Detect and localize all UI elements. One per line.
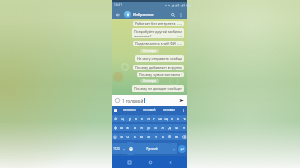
staticText: д xyxy=(168,125,171,130)
button[interactable]: Keyboard settings xyxy=(181,108,185,112)
button[interactable]: и xyxy=(145,133,152,140)
button[interactable]: Clipboard xyxy=(114,109,117,112)
button[interactable]: м xyxy=(138,133,145,140)
staticText: ч xyxy=(126,134,129,139)
button[interactable]: ф xyxy=(112,124,118,131)
button[interactable]: Emoji xyxy=(127,142,134,155)
button[interactable]: Emoji xyxy=(114,97,121,104)
button[interactable]: э xyxy=(180,124,187,131)
button[interactable]: Saved Messages xyxy=(124,11,131,18)
button[interactable]: у xyxy=(126,115,133,122)
button[interactable]: ц xyxy=(119,115,126,122)
button[interactable]: о xyxy=(152,124,159,131)
button[interactable]: Enter xyxy=(178,145,186,153)
button[interactable]: п xyxy=(138,124,145,131)
staticText: ц xyxy=(121,116,124,121)
button[interactable]: Почему не доходят сообщения xyxy=(132,85,184,92)
staticText: б xyxy=(168,134,171,139)
staticText: Почему добавляет в группы xyxy=(135,65,182,70)
button[interactable]: ь xyxy=(159,133,166,140)
button[interactable]: т xyxy=(152,133,159,140)
staticText: ы xyxy=(120,125,123,130)
button[interactable]: е xyxy=(139,115,145,122)
button[interactable]: Search xyxy=(169,11,176,18)
button[interactable]: головах xyxy=(162,108,176,112)
staticText: й xyxy=(114,116,117,121)
staticText: 14:41 xyxy=(114,3,122,7)
staticText: Русский xyxy=(146,147,158,151)
button[interactable]: Не могу отправить сообщение xyxy=(135,55,184,62)
button[interactable]: Подключитесь к wifi ФИ xyxy=(133,41,184,46)
staticText: ж xyxy=(175,125,178,130)
button[interactable]: ъ xyxy=(181,115,187,122)
button[interactable]: Backspace xyxy=(180,133,187,140)
staticText: Избранное xyxy=(133,12,154,17)
button[interactable]: н xyxy=(145,115,151,122)
button[interactable]: ш xyxy=(157,115,163,122)
staticText: голосом xyxy=(123,108,136,112)
button[interactable]: й xyxy=(112,115,119,122)
button[interactable]: Русский xyxy=(134,143,170,154)
button[interactable]: Send xyxy=(177,95,186,106)
button[interactable]: д xyxy=(166,124,173,131)
button[interactable]: Recents xyxy=(125,158,133,166)
staticText: Почему чужие контакты xyxy=(139,72,181,77)
button[interactable]: Back xyxy=(115,12,121,18)
button[interactable]: головой xyxy=(142,108,157,112)
staticText: Не могу отправить сообщение xyxy=(137,56,182,61)
staticText: головой xyxy=(143,108,156,112)
staticText: Подключитесь к wifi ФИ xyxy=(135,41,176,46)
button[interactable]: Почему добавляет в группы xyxy=(133,65,184,70)
staticText: интернет? xyxy=(134,34,152,37)
staticText: Попробуйте другой мобильный xyxy=(134,29,182,34)
staticText: п xyxy=(140,125,143,130)
button[interactable]: ж xyxy=(173,124,180,131)
staticText: е xyxy=(141,116,143,121)
staticText: щ xyxy=(164,116,168,121)
button[interactable]: г xyxy=(151,115,157,122)
button[interactable]: ы xyxy=(118,124,124,131)
button[interactable]: Home xyxy=(146,158,154,166)
staticText: у xyxy=(129,116,131,121)
button[interactable]: Back xyxy=(166,158,174,166)
button[interactable]: к xyxy=(133,115,139,122)
button[interactable]: More options xyxy=(178,12,184,18)
staticText: 1 головой xyxy=(122,98,144,104)
button[interactable]: Работает без интернета xyxy=(133,21,184,26)
staticText: и xyxy=(147,134,150,139)
staticText: н xyxy=(147,116,150,121)
button[interactable]: с xyxy=(131,133,138,140)
staticText: 11:2 xyxy=(177,42,182,45)
button[interactable]: щ xyxy=(163,115,169,122)
staticText: Почему не доходят сообщения xyxy=(134,86,182,91)
button[interactable]: Почему чужие контакты xyxy=(137,72,184,77)
button[interactable]: ?123 xyxy=(112,143,120,154)
staticText: ?123 xyxy=(113,147,120,151)
button[interactable]: в xyxy=(124,124,131,131)
button[interactable]: голосом xyxy=(122,108,137,112)
staticText: в xyxy=(126,125,129,130)
button[interactable]: р xyxy=(145,124,152,131)
staticText: ю xyxy=(175,134,178,139)
staticText: х xyxy=(177,116,179,121)
button[interactable]: з xyxy=(169,115,175,122)
staticText: 11:2 xyxy=(181,72,182,77)
staticText: 8 января xyxy=(143,49,156,53)
button[interactable]: х xyxy=(175,115,181,122)
staticText: с xyxy=(134,134,136,139)
button[interactable]: а xyxy=(131,124,138,131)
button[interactable]: Period xyxy=(170,143,177,154)
button[interactable]: л xyxy=(159,124,166,131)
button[interactable]: Comma xyxy=(120,143,127,154)
staticText: 11:2 xyxy=(177,22,182,25)
staticText: л xyxy=(161,125,164,130)
button[interactable]: Попробуйте другой мобильный xyxy=(132,28,184,38)
staticText: Работает без интернета xyxy=(135,21,176,26)
button[interactable]: я xyxy=(118,133,124,140)
button[interactable]: ю xyxy=(173,133,180,140)
button[interactable]: ч xyxy=(124,133,131,140)
staticText: р xyxy=(147,125,150,130)
button[interactable]: б xyxy=(166,133,173,140)
staticText: а xyxy=(134,125,136,130)
button[interactable]: Shift xyxy=(112,133,118,140)
